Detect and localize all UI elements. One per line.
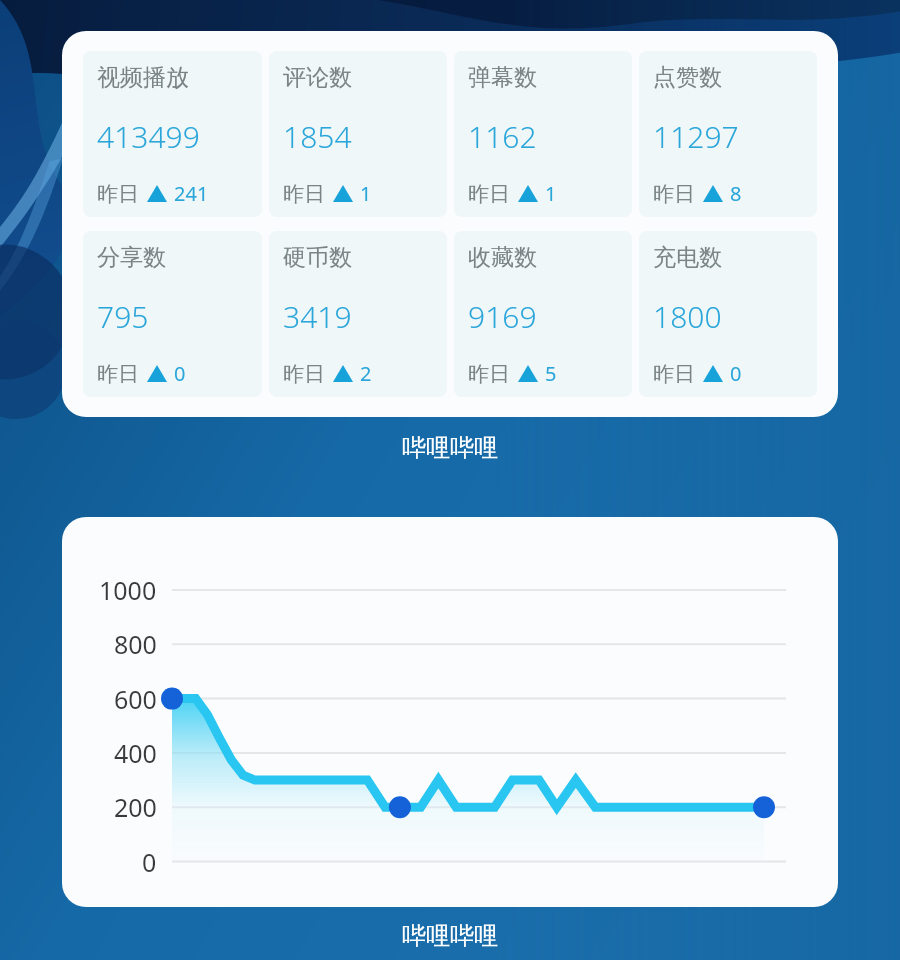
- staticText: 1000: [99, 573, 157, 607]
- button[interactable]: 收藏数: [454, 231, 632, 397]
- staticText: 昨日: [283, 181, 325, 207]
- staticText: 硬币数: [283, 243, 352, 272]
- staticText: 1: [545, 180, 557, 207]
- staticText: 11297: [653, 116, 739, 157]
- button[interactable]: 分享数: [83, 231, 262, 397]
- staticText: 充电数: [653, 243, 722, 272]
- button[interactable]: 视频播放: [62, 31, 838, 417]
- staticText: 昨日: [468, 181, 510, 207]
- staticText: 9169: [468, 296, 537, 337]
- button[interactable]: 评论数: [269, 51, 447, 217]
- staticText: 1162: [468, 116, 537, 157]
- staticText: 昨日: [283, 361, 325, 387]
- staticText: 分享数: [97, 243, 166, 272]
- button[interactable]: 点赞数: [639, 51, 817, 217]
- staticText: 8: [730, 180, 742, 207]
- staticText: 0: [730, 360, 742, 387]
- staticText: 弹幕数: [468, 63, 537, 92]
- staticText: 0: [142, 845, 157, 879]
- staticText: 3419: [283, 296, 352, 337]
- staticText: 241: [174, 180, 209, 207]
- staticText: 昨日: [653, 361, 695, 387]
- staticText: 评论数: [283, 63, 352, 92]
- staticText: 收藏数: [468, 243, 537, 272]
- staticText: 昨日: [653, 181, 695, 207]
- staticText: 5: [545, 360, 557, 387]
- staticText: 昨日: [97, 361, 139, 387]
- staticText: 哔哩哔哩: [402, 433, 498, 463]
- staticText: 昨日: [468, 361, 510, 387]
- staticText: 413499: [97, 116, 200, 157]
- staticText: 1: [360, 180, 372, 207]
- staticText: 视频播放: [97, 63, 189, 92]
- button[interactable]: 视频播放: [83, 51, 262, 217]
- staticText: 哔哩哔哩: [402, 921, 498, 951]
- button[interactable]: 充电数: [639, 231, 817, 397]
- staticText: 795: [97, 296, 149, 337]
- staticText: 200: [114, 790, 157, 824]
- staticText: 2: [360, 360, 372, 387]
- staticText: 1854: [283, 116, 352, 157]
- button[interactable]: 1000: [62, 517, 838, 907]
- staticText: 昨日: [97, 181, 139, 207]
- staticText: 1800: [653, 296, 722, 337]
- staticText: 800: [114, 627, 157, 661]
- staticText: 400: [114, 736, 157, 770]
- staticText: 0: [174, 360, 186, 387]
- staticText: 600: [114, 682, 157, 716]
- staticText: 点赞数: [653, 63, 722, 92]
- button[interactable]: 弹幕数: [454, 51, 632, 217]
- button[interactable]: 硬币数: [269, 231, 447, 397]
